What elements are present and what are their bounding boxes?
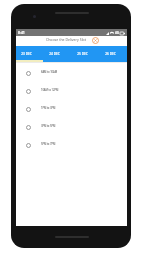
staticText: 4G [115, 31, 119, 35]
button[interactable]: 1PM to 3PM [16, 100, 127, 118]
button[interactable]: 8AM to 10AM [16, 64, 127, 82]
button[interactable]: 3PM to 5PM [16, 118, 127, 136]
button[interactable]: 25 DEC [71, 46, 99, 62]
button[interactable]: 10AM to 12PM [16, 82, 127, 100]
staticText: 8AM to 10AM [41, 70, 57, 74]
button[interactable]: 24 DEC [43, 46, 71, 62]
staticText: 25 DEC [77, 52, 88, 56]
staticText: 24 DEC [49, 52, 60, 56]
staticText: 5PM to 7PM [41, 142, 56, 146]
button[interactable]: 26 DEC [99, 46, 127, 62]
staticText: 26 DEC [105, 52, 116, 56]
staticText: 10AM to 12PM [41, 88, 59, 92]
button[interactable]: 5PM to 7PM [16, 136, 127, 154]
button[interactable]: Close [92, 37, 99, 44]
staticText: 1PM to 3PM [41, 106, 56, 110]
staticText: Choose the Delivery Slot [46, 37, 86, 42]
staticText: 8:41 [18, 30, 25, 35]
staticText: 3PM to 5PM [41, 124, 56, 128]
staticText: 23 DEC [21, 52, 32, 56]
button[interactable]: 23 DEC [16, 46, 43, 62]
